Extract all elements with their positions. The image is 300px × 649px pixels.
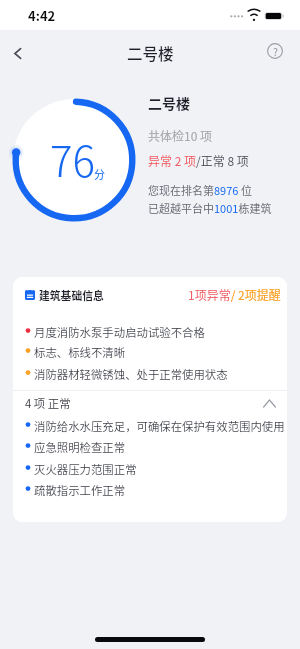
button[interactable]: Back — [2, 38, 32, 68]
staticText: 1项异常/ 2项提醒 — [188, 286, 281, 303]
staticText: 分 — [94, 166, 105, 182]
button[interactable]: Help — [261, 37, 289, 65]
staticText: 月度消防水泵手动启动试验不合格 — [34, 324, 205, 341]
staticText: 您现在排名第8976 位 — [148, 182, 252, 198]
staticText: 应急照明检查正常 — [34, 439, 126, 456]
staticText: ? — [273, 44, 278, 59]
staticText: 二号楼 — [148, 93, 190, 113]
staticText: 76 — [50, 128, 95, 189]
staticText: 4:42 — [28, 6, 56, 25]
staticText: 消防给水水压充足，可确保在保护有效范围内使用 — [34, 418, 285, 435]
staticText: 灭火器压力范围正常 — [34, 461, 137, 478]
staticText: 消防器材轻微锈蚀、处于正常使用状态 — [34, 366, 228, 383]
staticText: 标志、标线不清晰 — [34, 344, 126, 361]
staticText: 4 项 正常 — [25, 395, 71, 412]
staticText: 已超越平台中1001栋建筑 — [148, 200, 272, 216]
staticText: 疏散指示工作正常 — [34, 482, 126, 499]
staticText: 异常 2 项/正常 8 项 — [148, 152, 249, 169]
staticText: 建筑基础信息 — [39, 287, 104, 303]
staticText: 共体检10 项 — [148, 127, 213, 144]
staticText: 二号楼 — [127, 42, 174, 64]
button[interactable]: 4 项 正常 — [25, 391, 276, 415]
